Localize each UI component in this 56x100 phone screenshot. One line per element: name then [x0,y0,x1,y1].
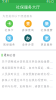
staticText: 查 [26,21,30,26]
staticText: 更 [45,36,49,41]
staticText: 9:41 [2,0,9,3]
staticText: 更多服务 [41,43,53,46]
button[interactable]: 卡 [0,20,19,32]
staticText: 咨询与办理。如有疑问，请拨打服务热线进行咨询。 [2,84,54,88]
staticText: 业务办理 [22,43,34,46]
staticText: 缴 [45,21,49,26]
staticText: 医 [7,36,11,41]
staticText: 关于调整城乡居民基本养老保险缴费标准的通知 [2,60,54,63]
staticText: 社保缴费 [41,29,53,32]
staticText: 办 [26,36,30,41]
staticText: 通知公告 [4,53,16,57]
button[interactable]: 更 [37,34,56,46]
staticText: 4G [46,0,50,3]
button[interactable]: 缴 [37,20,56,32]
staticText: 人员及时关注，并按照新的标准办理年度缴费手续，以保障自身权益不受影响。 [2,72,54,76]
staticText: 社保服务大厅 [16,5,40,10]
staticText: 社保卡 [5,29,14,32]
staticText: 卡 [7,21,11,26]
staticText: 为您提供以下便捷服务 [2,14,32,18]
button[interactable]: 查 [19,20,37,32]
staticText: 医保服务 [3,43,15,46]
staticText: 参保人可通过本平台在线办理查询、缴费、变更等业务，也可前往就近的社会保障服务网点… [2,78,54,82]
staticText: 参保查询 [22,29,34,32]
button[interactable]: 办 [19,34,37,46]
button[interactable]: 医 [0,34,19,46]
staticText: 根据国家有关规定，自本年度起，城乡居民基本养老保险的个人缴费档次将作出相应调整，… [2,66,54,70]
